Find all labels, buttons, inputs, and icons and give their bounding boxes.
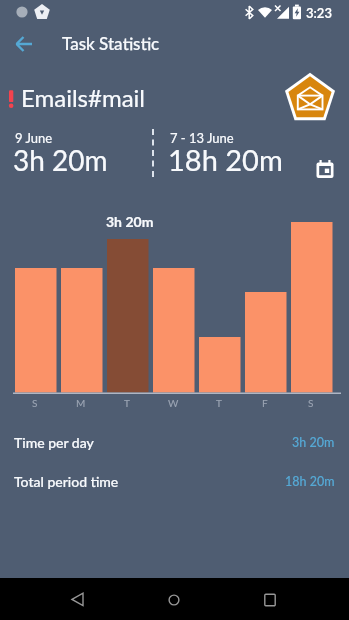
staticText: T <box>216 397 222 409</box>
staticText: 9 June <box>15 130 53 146</box>
button[interactable] <box>310 154 340 184</box>
staticText: Time per day <box>14 434 94 451</box>
staticText: T <box>124 397 130 409</box>
staticText: S <box>308 397 314 409</box>
staticText: 3h 20m <box>13 143 108 177</box>
button[interactable] <box>283 70 337 126</box>
staticText: Task Statistic <box>62 33 160 53</box>
staticText: Total period time <box>14 473 119 490</box>
staticText: M <box>76 397 86 409</box>
staticText: 3h 20m <box>292 435 335 450</box>
button[interactable]: Total period time <box>0 467 349 495</box>
button[interactable]: Time per day <box>0 428 349 456</box>
staticText: 18h 20m <box>285 474 335 489</box>
button[interactable] <box>60 581 96 617</box>
button[interactable] <box>8 28 40 60</box>
staticText: 3h 20m <box>106 213 154 230</box>
staticText: 3:23 <box>306 5 332 21</box>
button[interactable] <box>156 582 192 618</box>
staticText: S <box>32 397 38 409</box>
staticText: W <box>168 397 179 409</box>
staticText: 18h 20m <box>168 142 283 177</box>
button[interactable] <box>252 582 288 618</box>
staticText: F <box>262 397 268 409</box>
staticText: Emails#mail <box>21 83 146 112</box>
staticText: 7 - 13 June <box>170 130 234 146</box>
